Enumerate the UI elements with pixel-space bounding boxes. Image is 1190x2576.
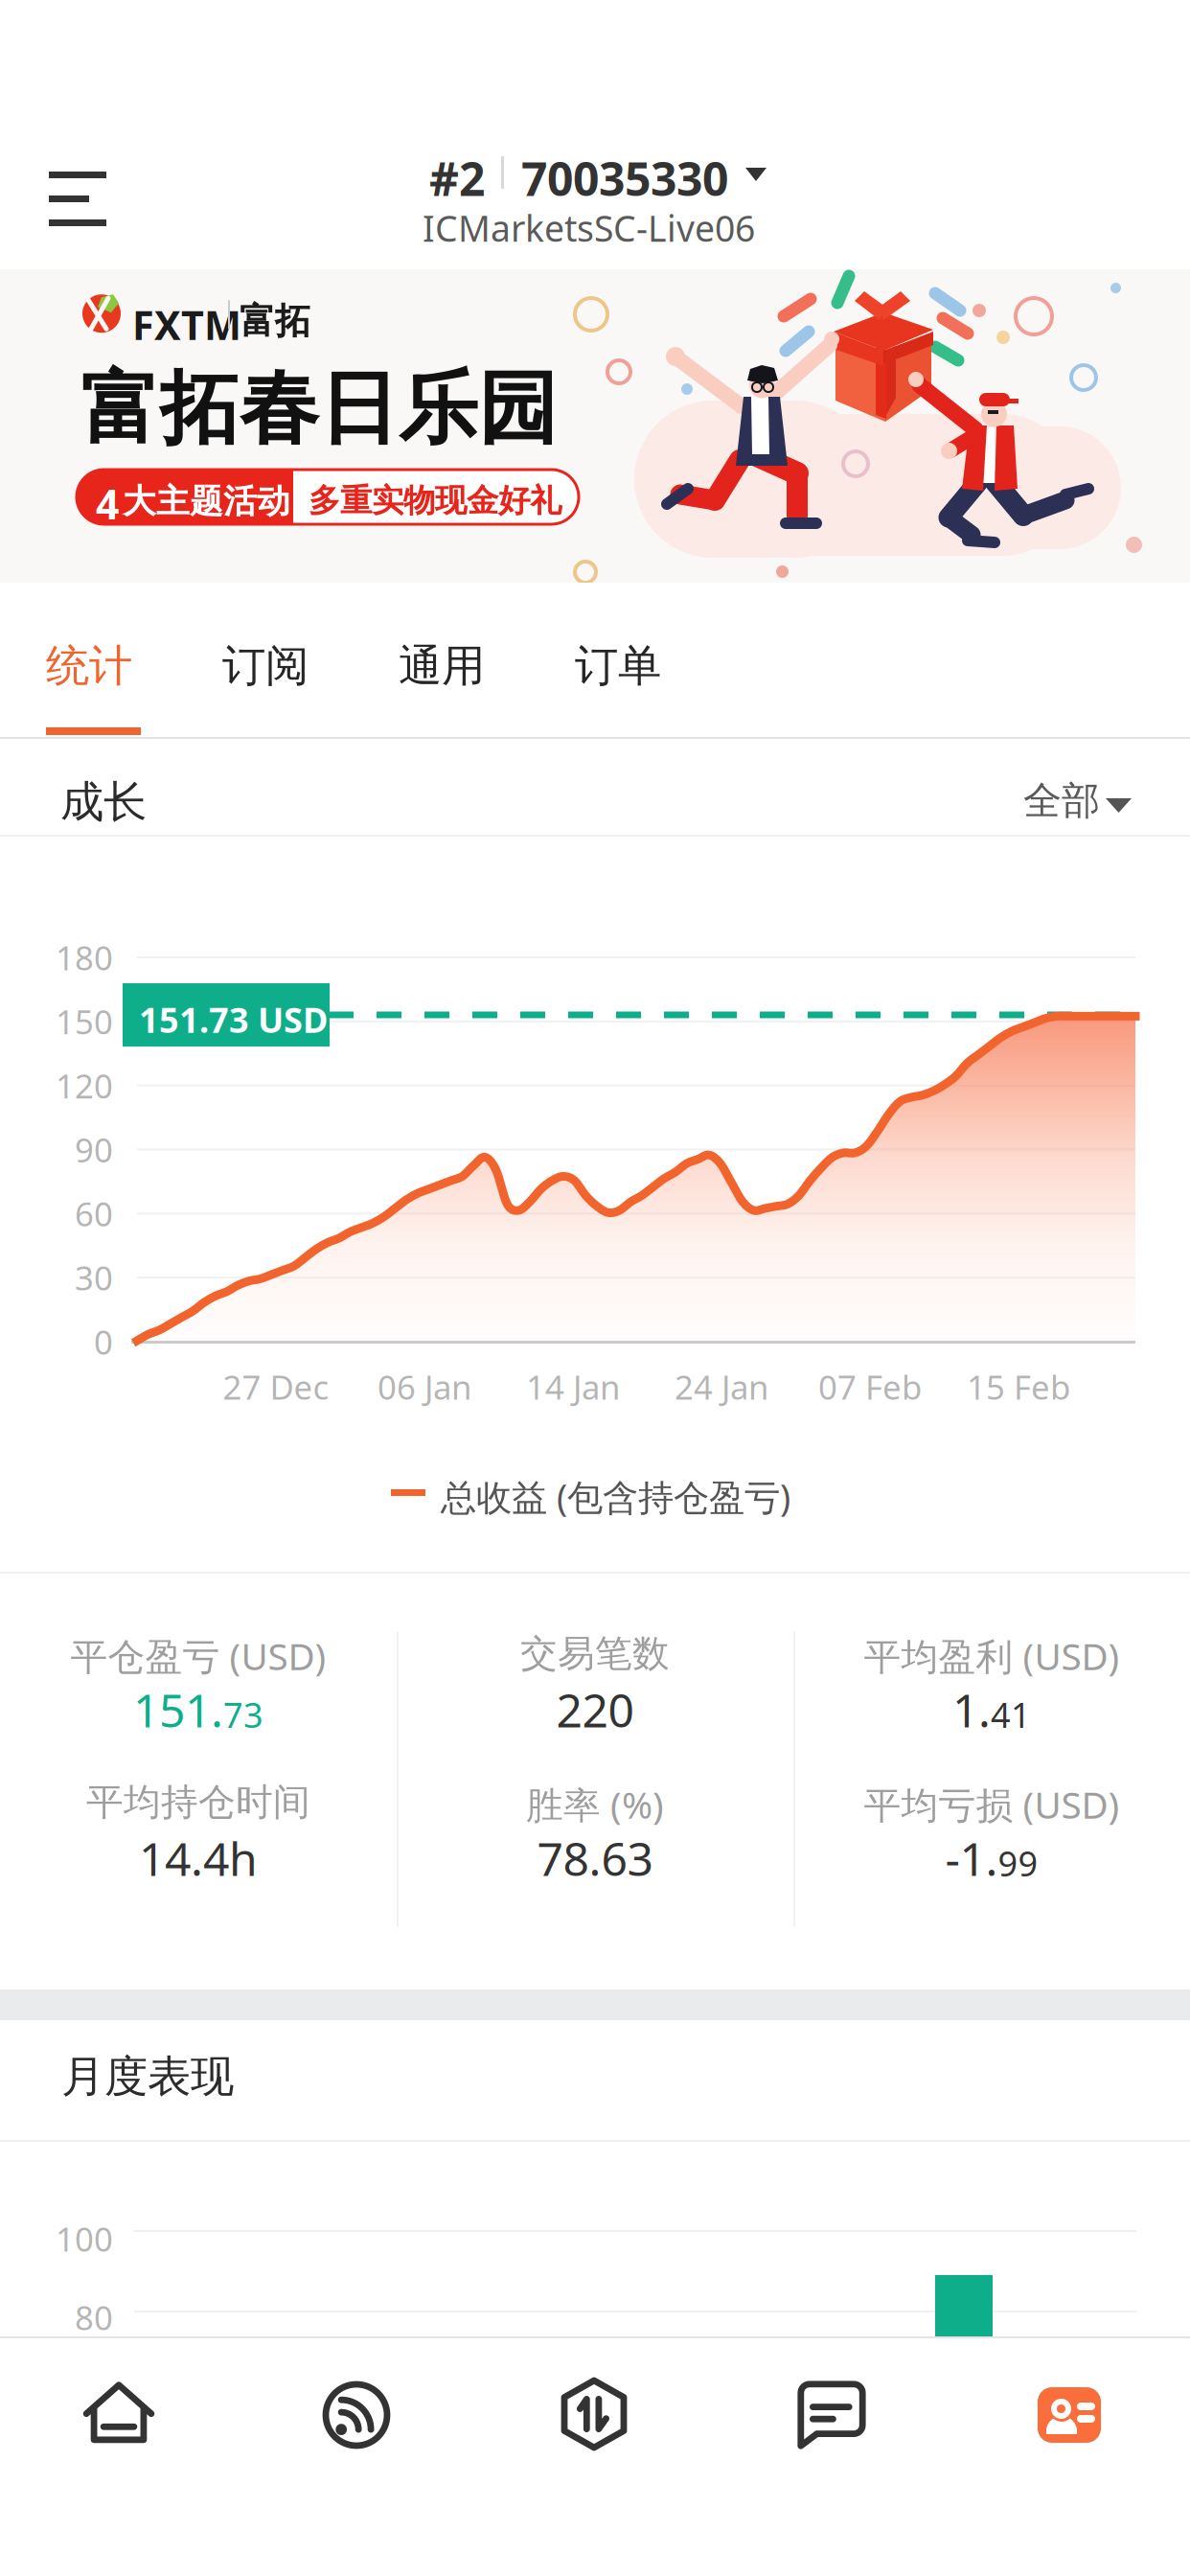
staticText: 月度表现 — [61, 2050, 234, 2103]
button[interactable]: Home — [0, 2338, 238, 2576]
staticText: 通用 — [399, 639, 485, 693]
staticText: 全部 — [1023, 777, 1100, 824]
staticText: 订单 — [575, 639, 661, 693]
staticText: 151.73 USD — [139, 997, 328, 1042]
staticText: 平均持仓时间 — [86, 1780, 310, 1825]
button[interactable]: 订单 — [575, 583, 751, 737]
button[interactable]: Menu — [0, 122, 153, 275]
staticText: 1. — [952, 1679, 991, 1740]
staticText: 订阅 — [222, 639, 309, 693]
staticText: 平仓盈亏 (USD) — [70, 1631, 326, 1680]
staticText: 富拓春日乐园 — [80, 360, 558, 458]
staticText: 胜率 (%) — [526, 1780, 664, 1829]
staticText: 100 — [56, 2217, 113, 2261]
staticText: 多重实物现金好礼 — [309, 481, 561, 520]
staticText: 60 — [75, 1191, 113, 1236]
button[interactable]: Trade — [475, 2338, 713, 2576]
staticText: 90 — [75, 1127, 113, 1172]
staticText: 150 — [56, 999, 113, 1043]
staticText: 151. — [133, 1679, 223, 1740]
staticText: 41 — [991, 1692, 1031, 1737]
staticText: 220 — [556, 1679, 634, 1740]
staticText: 70035330 — [521, 148, 728, 209]
staticText: 99 — [998, 1840, 1038, 1886]
staticText: 成长 — [60, 775, 147, 829]
staticText: 78.63 — [537, 1828, 653, 1889]
button[interactable]: 全部 — [1008, 739, 1190, 837]
staticText: 14 Jan — [526, 1365, 620, 1409]
staticText: 80 — [75, 2295, 113, 2339]
staticText: 07 Feb — [818, 1365, 922, 1409]
button[interactable]: FXTM spring festival promotion — [0, 269, 1190, 583]
staticText: -1. — [945, 1828, 998, 1889]
staticText: 06 Jan — [378, 1365, 471, 1409]
staticText: 统计 — [46, 639, 132, 693]
button[interactable]: Accounts — [950, 2338, 1188, 2576]
staticText: 4 — [96, 476, 119, 531]
staticText: #2 — [429, 148, 485, 209]
staticText: ICMarketsSC-Live06 — [423, 204, 755, 252]
staticText: 120 — [56, 1063, 113, 1108]
staticText: FXTM — [132, 298, 241, 351]
button[interactable]: 通用 — [399, 583, 575, 737]
button[interactable]: 订阅 — [222, 583, 399, 737]
staticText: 总收益 (包含持仓盈亏) — [441, 1473, 790, 1520]
staticText: 27 Dec — [223, 1365, 329, 1409]
button[interactable]: Signals — [238, 2338, 475, 2576]
staticText: 15 Feb — [967, 1365, 1070, 1409]
staticText: 180 — [56, 935, 113, 979]
button[interactable]: Messages — [713, 2338, 950, 2576]
staticText: 富拓 — [240, 299, 310, 343]
staticText: 30 — [75, 1256, 113, 1300]
button[interactable]: 统计 — [46, 583, 222, 737]
staticText: 73 — [223, 1692, 263, 1737]
staticText: 平均亏损 (USD) — [864, 1780, 1120, 1829]
button[interactable]: #2 — [429, 148, 812, 263]
staticText: 大主题活动 — [123, 481, 290, 522]
staticText: 24 Jan — [675, 1365, 768, 1409]
staticText: 平均盈利 (USD) — [864, 1631, 1120, 1680]
staticText: 14.4h — [139, 1828, 258, 1889]
staticText: 0 — [94, 1320, 113, 1364]
staticText: 交易笔数 — [520, 1631, 670, 1677]
